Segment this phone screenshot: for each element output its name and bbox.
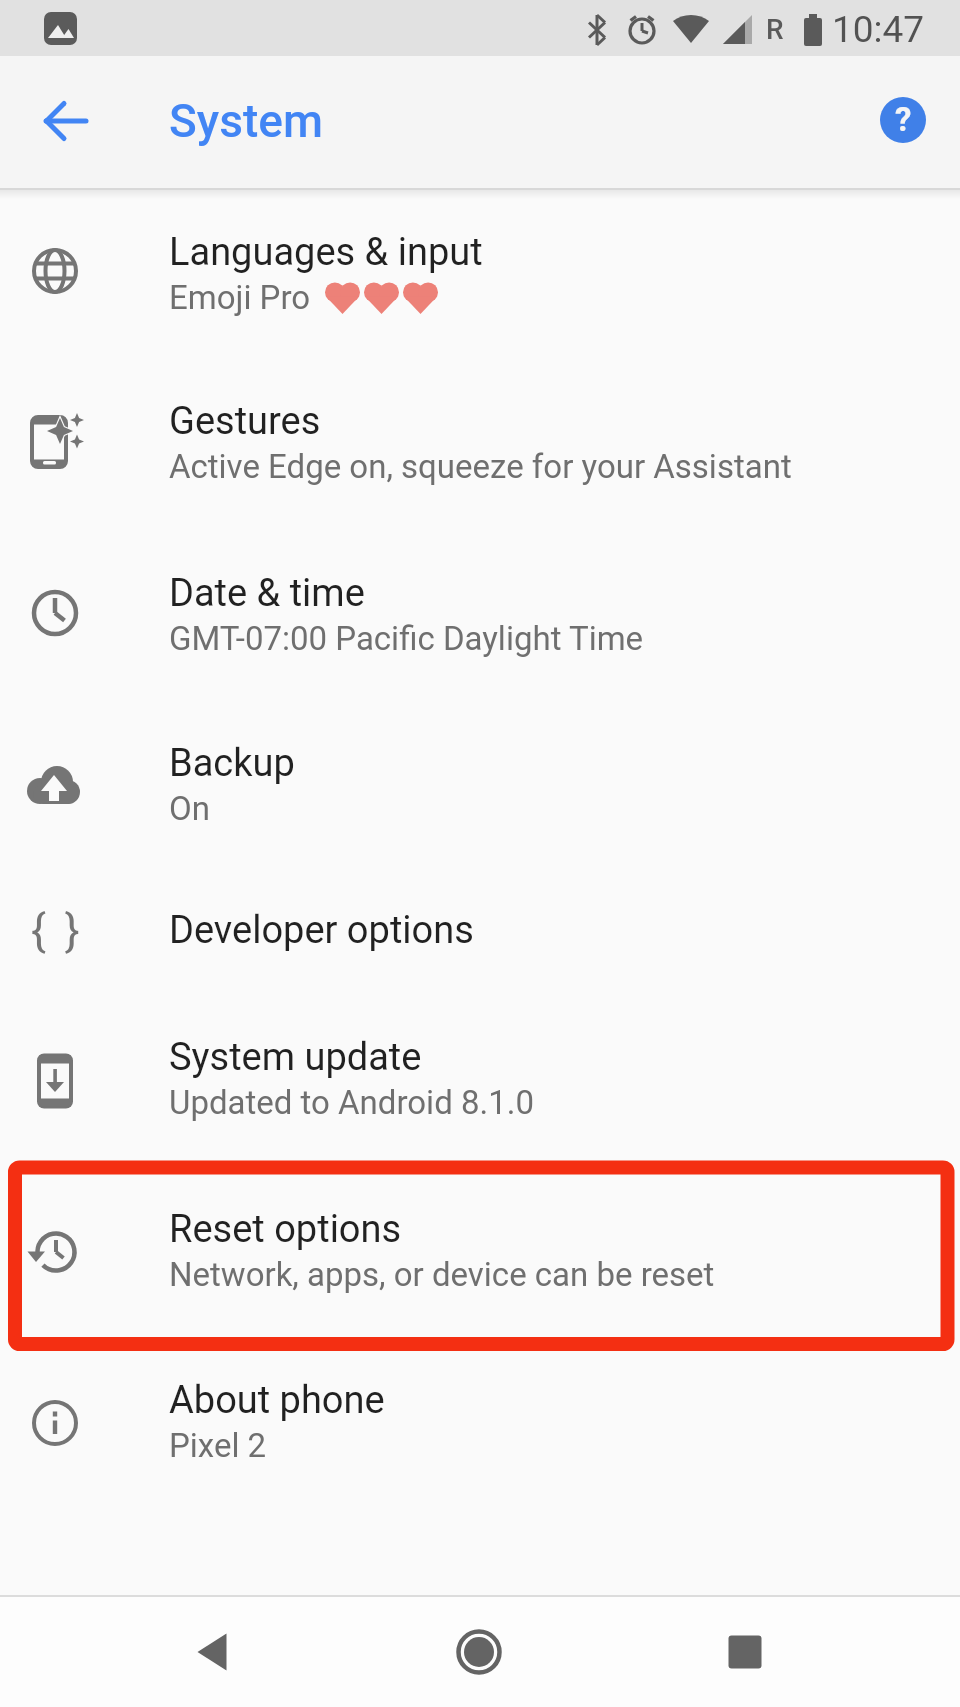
button[interactable]: ? (880, 97, 926, 143)
staticText: Backup (169, 741, 295, 786)
staticText: Languages & input (169, 230, 483, 275)
button[interactable]: Date & time (0, 532, 960, 703)
button[interactable] (439, 1612, 519, 1692)
button[interactable] (705, 1612, 785, 1692)
button[interactable]: Backup (0, 703, 960, 874)
staticText: GMT-07:00 Pacific Daylight Time (169, 619, 644, 658)
staticText: ? (895, 100, 912, 139)
button[interactable]: Reset options (0, 1171, 960, 1342)
staticText: Active Edge on, squeeze for your Assista… (169, 447, 792, 486)
staticText: { } (31, 905, 84, 957)
button[interactable] (42, 97, 90, 145)
staticText: System (169, 94, 323, 148)
staticText: Gestures (169, 399, 321, 444)
button[interactable] (172, 1612, 252, 1692)
staticText: 10:47 (832, 8, 925, 51)
staticText: Date & time (169, 571, 365, 616)
staticText: R (766, 13, 784, 46)
staticText: Pixel 2 (169, 1426, 267, 1465)
staticText: Network, apps, or device can be reset (169, 1255, 715, 1294)
staticText: On (169, 789, 210, 828)
staticText: About phone (169, 1378, 385, 1423)
staticText: Emoji Pro (169, 278, 319, 317)
button[interactable]: About phone (0, 1342, 960, 1513)
button[interactable]: System update (0, 1000, 960, 1171)
button[interactable]: Languages & input (0, 190, 960, 361)
staticText: Developer options (169, 908, 474, 953)
staticText: Reset options (169, 1207, 402, 1252)
staticText: Updated to Android 8.1.0 (169, 1083, 534, 1122)
staticText: System update (169, 1035, 422, 1080)
button[interactable]: { } (0, 874, 960, 1000)
button[interactable]: Gestures (0, 361, 960, 532)
